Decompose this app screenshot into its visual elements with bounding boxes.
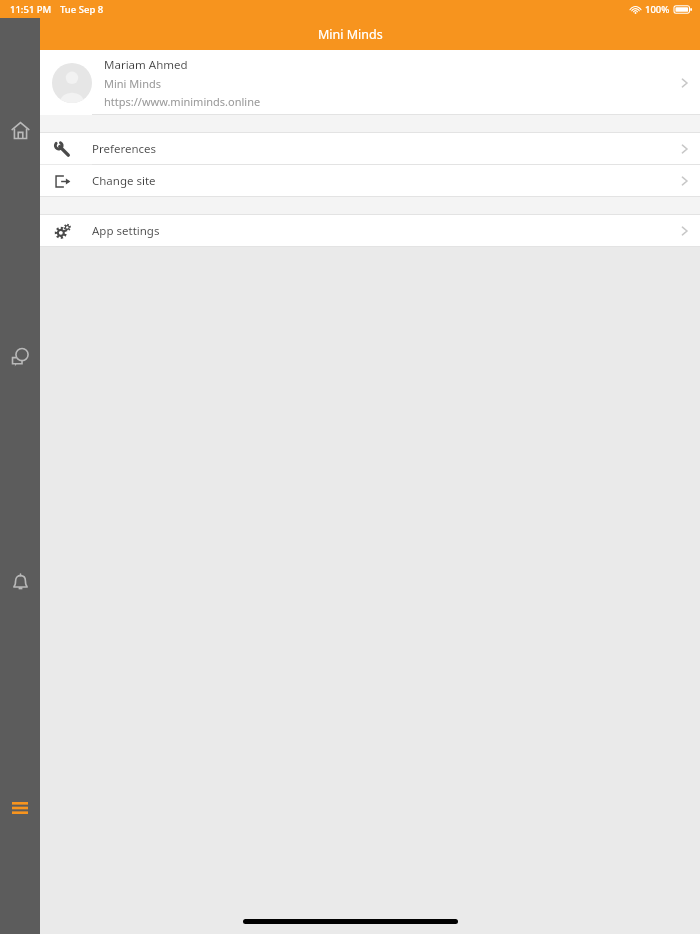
button[interactable]: Mariam Ahmed	[40, 50, 700, 115]
staticText: 11:51 PM	[10, 3, 52, 16]
button[interactable]: Home	[3, 113, 37, 147]
staticText: Mariam Ahmed	[104, 57, 188, 73]
button[interactable]: App settings	[40, 215, 700, 246]
staticText: 100%	[645, 3, 670, 16]
staticText: Tue Sep 8	[60, 3, 104, 16]
staticText: Preferences	[92, 141, 157, 157]
staticText: Mini Minds	[104, 76, 161, 91]
button[interactable]: Change site	[40, 165, 700, 196]
button[interactable]: Messages	[3, 339, 37, 373]
staticText: Change site	[92, 173, 156, 189]
staticText: App settings	[92, 223, 160, 239]
button[interactable]: Preferences	[40, 133, 700, 164]
button[interactable]: Menu	[3, 791, 37, 825]
staticText: Mini Minds	[318, 26, 383, 43]
button[interactable]: Notifications	[3, 565, 37, 599]
staticText: https://www.miniminds.online	[104, 94, 261, 109]
